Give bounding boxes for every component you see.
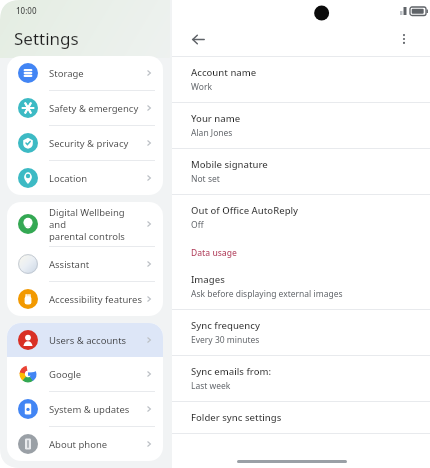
button[interactable]: Digital Wellbeing and parental controls xyxy=(7,202,163,246)
staticText: Off xyxy=(191,219,204,231)
button[interactable]: Back xyxy=(186,27,210,51)
staticText: Out of Office AutoReply xyxy=(191,204,299,217)
button[interactable]: Sync frequency xyxy=(172,310,430,355)
button[interactable]: System & updates xyxy=(7,392,163,426)
button[interactable]: Google xyxy=(7,357,163,391)
staticText: Sync emails from: xyxy=(191,365,272,378)
staticText: Storage xyxy=(49,67,144,80)
button[interactable]: Folder sync settings xyxy=(172,402,430,433)
staticText: Last week xyxy=(191,380,231,392)
staticText: Accessibility features xyxy=(49,293,144,306)
staticText: Images xyxy=(191,273,225,286)
button[interactable]: Security & privacy xyxy=(7,126,163,160)
staticText: About phone xyxy=(49,438,144,451)
button[interactable]: Accessibility features xyxy=(7,282,163,316)
staticText: Your name xyxy=(191,112,241,125)
button[interactable]: More options xyxy=(392,27,416,51)
staticText: Folder sync settings xyxy=(191,411,282,424)
staticText: Mobile signature xyxy=(191,158,268,171)
staticText: Settings xyxy=(14,27,79,50)
staticText: Work xyxy=(191,81,212,93)
staticText: Ask before displaying external images xyxy=(191,288,343,300)
button[interactable]: Safety & emergency xyxy=(7,91,163,125)
button[interactable]: About phone xyxy=(7,427,163,461)
button[interactable]: Sync emails from: xyxy=(172,356,430,401)
button[interactable]: Images xyxy=(172,262,430,309)
button[interactable]: Account name xyxy=(172,57,430,102)
staticText: Assistant xyxy=(49,258,144,271)
staticText: Google xyxy=(49,368,144,381)
staticText: Alan Jones xyxy=(191,127,233,139)
button[interactable]: Assistant xyxy=(7,247,163,281)
button[interactable]: Mobile signature xyxy=(172,149,430,194)
staticText: Location xyxy=(49,172,144,185)
staticText: Sync frequency xyxy=(191,319,260,332)
staticText: Not set xyxy=(191,173,220,185)
staticText: Every 30 minutes xyxy=(191,334,260,346)
staticText: 10:00 xyxy=(16,5,37,16)
button[interactable]: Location xyxy=(7,161,163,195)
staticText: Data usage xyxy=(191,247,237,259)
button[interactable]: Out of Office AutoReply xyxy=(172,195,430,240)
staticText: Security & privacy xyxy=(49,137,144,150)
staticText: Digital Wellbeing and parental controls xyxy=(49,206,144,243)
button[interactable]: Your name xyxy=(172,103,430,148)
staticText: Users & accounts xyxy=(49,334,144,347)
staticText: Account name xyxy=(191,66,257,79)
staticText: System & updates xyxy=(49,403,144,416)
button[interactable]: Storage xyxy=(7,56,163,90)
staticText: Safety & emergency xyxy=(49,102,144,115)
button[interactable]: Users & accounts xyxy=(7,323,163,357)
